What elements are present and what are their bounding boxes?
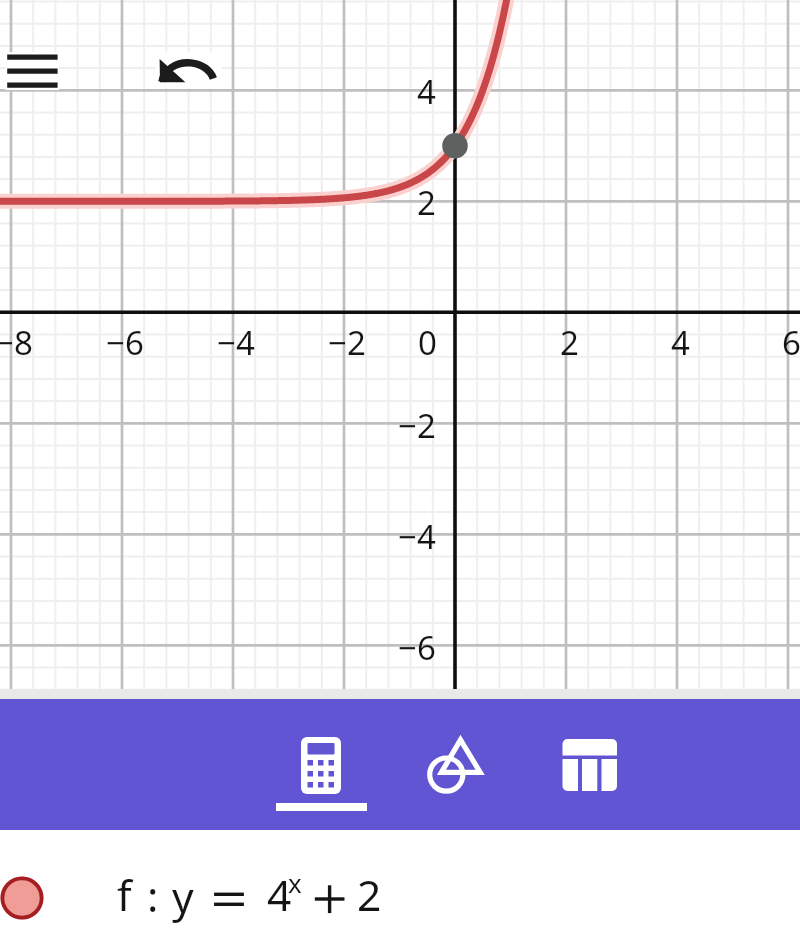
staticText: −6 [398,625,436,670]
staticText: 2 [417,180,436,225]
staticText: −2 [328,320,366,365]
staticText: 4 [267,866,292,924]
staticText: −4 [398,514,436,559]
staticText: 4 [417,69,436,114]
staticText: x [288,865,302,900]
staticText: −2 [398,403,436,448]
button[interactable]: Table [526,699,654,830]
staticText: −8 [0,320,33,365]
staticText: 2 [560,320,579,365]
button[interactable]: Geometry [395,699,523,830]
staticText: y [172,868,194,926]
staticText: −4 [217,320,255,365]
staticText: f [117,866,132,924]
staticText: −6 [106,320,144,365]
button[interactable]: Calculator [257,699,385,830]
button[interactable]: f [0,830,800,948]
button[interactable]: Menu [0,44,62,94]
staticText: 2 [357,866,382,924]
staticText: 4 [671,320,690,365]
staticText: 6 [782,320,800,365]
button[interactable]: Undo [152,46,228,94]
staticText: 0 [418,320,437,365]
staticText: : [147,867,159,925]
